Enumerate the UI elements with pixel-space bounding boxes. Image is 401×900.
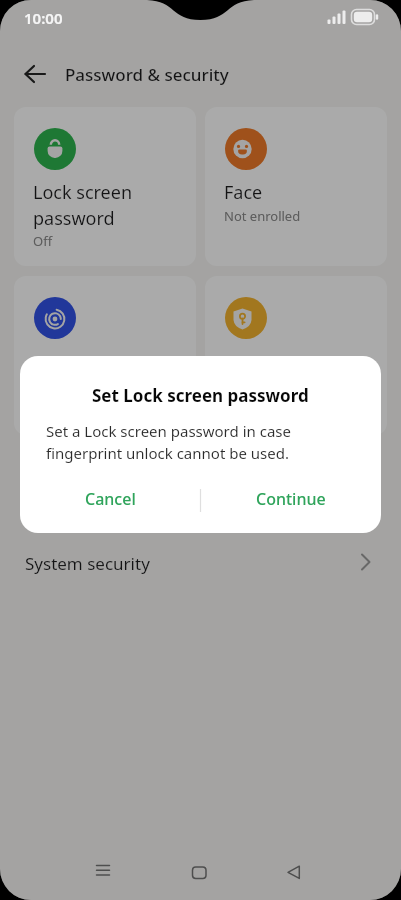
staticText: Set Lock screen password — [92, 384, 309, 407]
staticText: Continue — [256, 488, 326, 510]
staticText: Password & security — [65, 63, 229, 86]
staticText: 10:00 — [24, 8, 63, 28]
staticText: Cancel — [85, 488, 136, 510]
staticText: Lock screen password — [33, 180, 133, 231]
staticText: Not enrolled — [224, 207, 301, 225]
staticText: Off — [33, 232, 53, 250]
staticText: System security — [25, 552, 150, 575]
staticText: Set a Lock screen password in case finge… — [46, 421, 291, 464]
staticText: Face — [224, 180, 263, 205]
